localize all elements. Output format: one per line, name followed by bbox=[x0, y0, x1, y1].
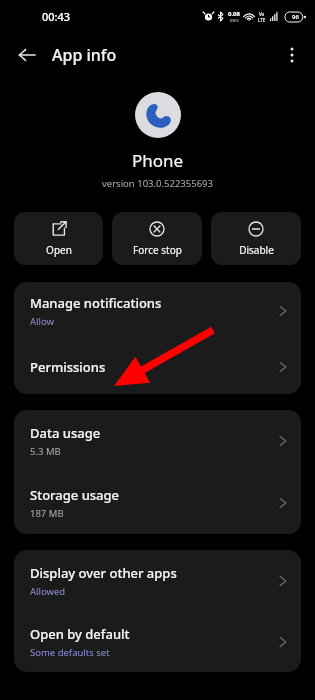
staticText: 00:43 bbox=[42, 9, 71, 24]
staticText: Open bbox=[46, 243, 72, 257]
button[interactable]: Display over other apps bbox=[14, 550, 301, 611]
staticText: 5.3 MB bbox=[30, 445, 61, 458]
staticText: Phone bbox=[132, 149, 184, 172]
button[interactable]: Permissions bbox=[14, 340, 301, 394]
staticText: Allowed bbox=[30, 585, 66, 598]
staticText: Disable bbox=[239, 243, 274, 257]
button[interactable]: Force stop bbox=[112, 212, 202, 265]
button[interactable]: Data usage bbox=[14, 410, 301, 472]
button[interactable]: Back bbox=[9, 37, 45, 73]
staticText: KB/S bbox=[230, 18, 239, 23]
staticText: Open by default bbox=[30, 625, 130, 643]
staticText: LTE bbox=[258, 17, 266, 23]
staticText: Data usage bbox=[30, 424, 101, 442]
button[interactable]: Disable bbox=[211, 212, 301, 265]
button[interactable]: More options bbox=[275, 38, 309, 72]
button[interactable]: Open by default bbox=[14, 611, 301, 672]
staticText: 0.08 bbox=[228, 10, 240, 18]
staticText: Vo bbox=[259, 11, 265, 17]
button[interactable]: Storage usage bbox=[14, 472, 301, 534]
staticText: Some defaults set bbox=[30, 646, 110, 659]
button[interactable]: Manage notifications bbox=[14, 282, 301, 340]
staticText: 96 bbox=[292, 13, 299, 21]
staticText: 187 MB bbox=[30, 507, 64, 520]
staticText: Display over other apps bbox=[30, 564, 177, 582]
staticText: Permissions bbox=[30, 358, 106, 376]
staticText: Allow bbox=[30, 315, 54, 328]
staticText: App info bbox=[52, 44, 117, 66]
staticText: Force stop bbox=[133, 243, 182, 257]
button[interactable]: Open bbox=[14, 212, 103, 265]
staticText: version 103.0.522355693 bbox=[102, 177, 213, 190]
staticText: Storage usage bbox=[30, 486, 120, 504]
staticText: Manage notifications bbox=[30, 294, 162, 312]
